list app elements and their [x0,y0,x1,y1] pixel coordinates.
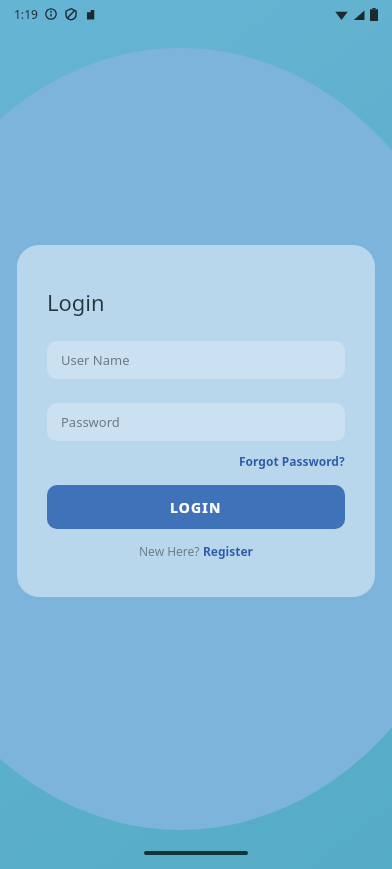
staticText: Login [47,287,105,317]
button[interactable]: LOGIN [47,485,345,529]
staticText: New Here? [139,543,203,559]
button[interactable]: User Name [47,341,345,379]
staticText: 1:19 [14,6,38,22]
button[interactable]: Forgot Password? [47,453,345,469]
staticText: Forgot Password? [239,453,345,469]
button[interactable]: Password [47,403,345,441]
staticText: LOGIN [170,498,222,517]
button[interactable]: New Here? [47,543,345,559]
staticText: Register [203,543,253,559]
staticText: User Name [61,351,130,369]
staticText: Password [61,413,120,431]
